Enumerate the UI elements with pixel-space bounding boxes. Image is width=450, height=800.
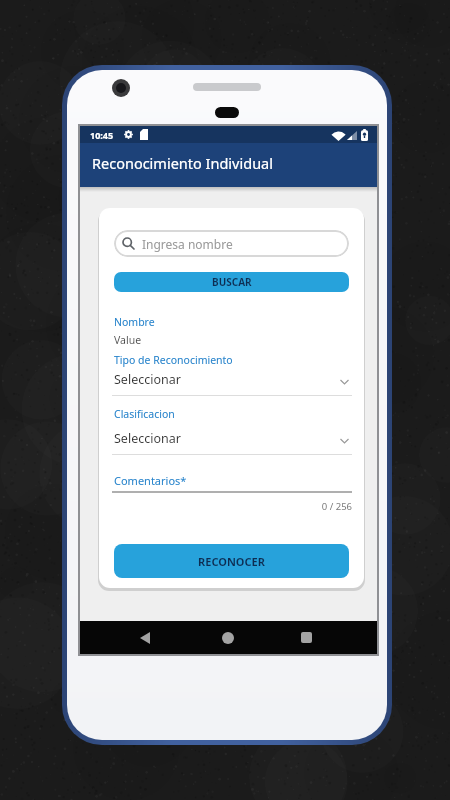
button[interactable]: RECONOCER (114, 544, 349, 578)
button[interactable] (140, 632, 150, 644)
staticText: Clasificacion (114, 407, 175, 421)
staticText: 0 / 256 (112, 500, 352, 513)
staticText: Comentarios* (114, 473, 187, 488)
staticText: BUSCAR (212, 275, 252, 289)
button[interactable] (301, 632, 312, 643)
staticText: Seleccionar (114, 430, 181, 447)
button[interactable] (222, 632, 234, 644)
button[interactable]: Ingresa nombre (114, 230, 349, 257)
button[interactable]: BUSCAR (114, 272, 349, 292)
button[interactable]: Seleccionar (114, 430, 349, 452)
button[interactable]: Seleccionar (114, 371, 349, 393)
staticText: Reconocimiento Individual (92, 153, 273, 173)
staticText: 10:45 (90, 129, 114, 141)
staticText: Value (114, 333, 142, 347)
staticText: Tipo de Reconocimiento (114, 353, 233, 367)
button[interactable]: Reconocimiento Individual (80, 143, 377, 187)
staticText: Seleccionar (114, 371, 181, 388)
staticText: Ingresa nombre (142, 236, 233, 252)
staticText: Nombre (114, 315, 155, 329)
staticText: RECONOCER (198, 554, 266, 569)
